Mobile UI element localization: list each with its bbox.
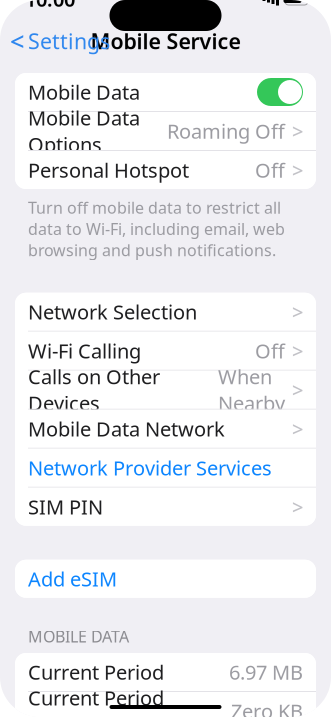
staticText: When Nearby bbox=[218, 363, 285, 416]
button[interactable]: Network Selection bbox=[15, 293, 316, 331]
staticText: Roaming Off bbox=[167, 118, 285, 144]
button[interactable]: Network Provider Services bbox=[15, 449, 316, 487]
staticText: 6.97 MB bbox=[229, 659, 303, 685]
button[interactable]: Personal Hotspot bbox=[15, 151, 316, 189]
button[interactable]: Mobile Data Options bbox=[15, 112, 316, 150]
button[interactable]: Add eSIM bbox=[15, 560, 316, 598]
button[interactable]: Current Period Roaming bbox=[15, 692, 316, 717]
staticText: Mobile Data Options bbox=[28, 104, 140, 157]
staticText: Mobile Service bbox=[90, 27, 240, 55]
staticText: > bbox=[292, 298, 303, 325]
staticText: Current Period Roaming bbox=[28, 684, 164, 717]
staticText: Calls on Other Devices bbox=[28, 363, 160, 416]
staticText: > bbox=[292, 493, 303, 520]
button[interactable]: < bbox=[0, 18, 110, 64]
staticText: Current Period bbox=[28, 659, 164, 685]
button[interactable]: Current Period bbox=[15, 653, 316, 691]
button[interactable]: Mobile Data toggle bbox=[257, 78, 303, 106]
staticText: MOBILE DATA bbox=[28, 626, 129, 647]
staticText: > bbox=[292, 118, 303, 144]
staticText: > bbox=[292, 415, 303, 442]
staticText: Add eSIM bbox=[28, 565, 117, 592]
staticText: Zero KB bbox=[231, 698, 303, 717]
button[interactable]: Calls on Other Devices bbox=[15, 371, 316, 409]
staticText: Turn off mobile data to restrict all dat… bbox=[28, 197, 285, 261]
button[interactable]: SIM PIN bbox=[15, 488, 316, 526]
staticText: 10:00 bbox=[25, 0, 75, 12]
staticText: Mobile Data Network bbox=[28, 415, 225, 442]
staticText: Off bbox=[255, 157, 285, 183]
staticText: Personal Hotspot bbox=[28, 157, 189, 183]
staticText: Off bbox=[255, 337, 285, 364]
button[interactable]: Mobile Data Network bbox=[15, 410, 316, 448]
staticText: Settings bbox=[28, 27, 110, 55]
staticText: > bbox=[292, 157, 303, 183]
staticText: Network Selection bbox=[28, 298, 197, 325]
staticText: < bbox=[10, 24, 24, 58]
staticText: > bbox=[292, 376, 303, 403]
staticText: > bbox=[292, 337, 303, 364]
staticText: Mobile Data bbox=[28, 79, 140, 105]
button[interactable]: Wi-Fi Calling bbox=[15, 332, 316, 370]
staticText: Wi-Fi Calling bbox=[28, 337, 141, 364]
staticText: SIM PIN bbox=[28, 493, 103, 520]
staticText: Network Provider Services bbox=[28, 454, 272, 481]
